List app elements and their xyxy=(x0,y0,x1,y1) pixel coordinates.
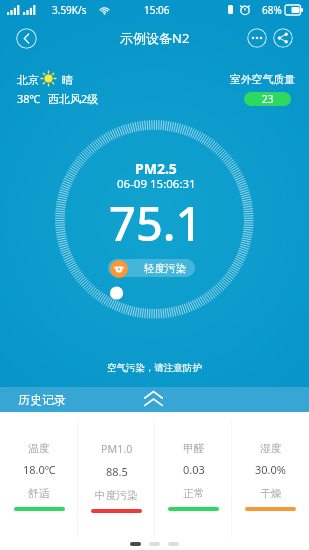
staticText: 06-09 15:06:31 xyxy=(117,176,196,192)
button[interactable]: 甲醛 xyxy=(155,412,232,531)
staticText: PM1.0 xyxy=(101,442,133,457)
button[interactable]: PM1.0 xyxy=(78,412,155,531)
staticText: 北京 xyxy=(17,73,39,87)
staticText: 温度 xyxy=(28,442,50,455)
button[interactable]: 23 xyxy=(244,92,291,106)
staticText: 38℃ xyxy=(17,91,41,106)
staticText: 干燥 xyxy=(260,487,282,500)
button[interactable]: 历史记录 xyxy=(0,387,309,412)
staticText: 示例设备N2 xyxy=(120,29,190,47)
button[interactable]: Share xyxy=(273,28,293,48)
staticText: 75.1 xyxy=(109,191,203,255)
staticText: PM2.5 xyxy=(135,159,177,178)
staticText: 历史记录 xyxy=(18,392,66,407)
staticText: 空气污染，请注意防护 xyxy=(107,362,202,374)
button[interactable]: Back xyxy=(16,28,37,49)
staticText: 晴 xyxy=(62,73,73,87)
staticText: 轻度污染 xyxy=(144,262,186,275)
staticText: 中度污染 xyxy=(95,489,138,502)
staticText: 18.0℃ xyxy=(23,462,56,477)
button[interactable]: More xyxy=(247,28,267,48)
staticText: 3.59K/s xyxy=(52,3,87,17)
staticText: 30.0% xyxy=(255,462,286,477)
staticText: 0.03 xyxy=(183,462,205,477)
staticText: 23 xyxy=(262,92,274,106)
staticText: 68% xyxy=(262,3,282,17)
staticText: 湿度 xyxy=(260,442,282,455)
staticText: 甲醛 xyxy=(183,442,205,455)
staticText: 15:06 xyxy=(144,3,170,17)
staticText: 正常 xyxy=(183,487,205,500)
button[interactable]: 轻度污染 xyxy=(108,259,195,277)
staticText: 西北风2级 xyxy=(48,91,99,106)
button[interactable]: 温度 xyxy=(0,412,78,531)
staticText: 舒适 xyxy=(28,487,50,500)
staticText: 室外空气质量 xyxy=(230,73,295,87)
button[interactable]: 湿度 xyxy=(232,412,309,511)
staticText: 88.5 xyxy=(106,464,128,479)
